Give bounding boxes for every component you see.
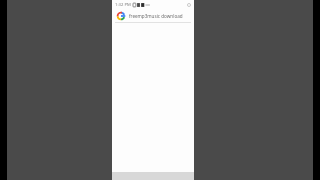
staticText: 1:32 PM xyxy=(115,2,131,8)
other: Google xyxy=(117,12,125,20)
staticText: freemp3music download xyxy=(129,13,183,19)
button[interactable]: Google xyxy=(112,9,194,22)
